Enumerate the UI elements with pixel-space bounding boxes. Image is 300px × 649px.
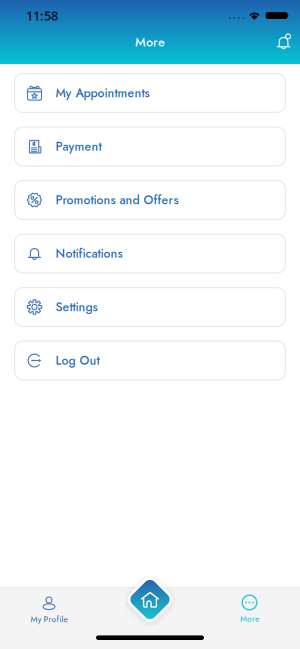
- button[interactable]: My Profile: [0, 587, 98, 625]
- staticText: My Profile: [30, 613, 67, 625]
- staticText: Notifications: [55, 245, 122, 262]
- button[interactable]: Payment: [14, 126, 286, 166]
- button[interactable]: Settings: [14, 287, 286, 327]
- staticText: More: [240, 613, 259, 625]
- button[interactable]: Promotions and Offers: [14, 180, 286, 220]
- button[interactable]: Log Out: [14, 340, 286, 380]
- staticText: Settings: [55, 298, 97, 316]
- button[interactable]: More: [199, 587, 300, 625]
- button[interactable]: My Appointments: [14, 73, 286, 113]
- staticText: Payment: [55, 138, 101, 155]
- button[interactable]: Home: [126, 575, 174, 623]
- staticText: Promotions and Offers: [55, 191, 178, 209]
- staticText: My Appointments: [55, 84, 149, 102]
- button[interactable]: Notifications: [274, 33, 300, 50]
- button[interactable]: Notifications: [14, 233, 286, 273]
- staticText: 11:58: [26, 7, 58, 24]
- staticText: Log Out: [55, 352, 99, 369]
- staticText: More: [135, 33, 165, 51]
